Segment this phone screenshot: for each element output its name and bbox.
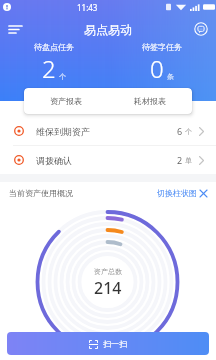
staticText: 扫一扫 — [103, 339, 127, 349]
staticText: 当前资产使用概况 — [9, 188, 73, 198]
staticText: 待盘点任务 — [34, 42, 74, 52]
button[interactable]: Menu — [5, 19, 25, 39]
staticText: 待签字任务 — [142, 42, 182, 52]
staticText: 维保到期资产 — [36, 126, 90, 137]
staticText: 11:43 — [77, 2, 98, 13]
staticText: 6 — [177, 125, 183, 137]
staticText: 2 — [42, 52, 56, 85]
staticText: 切换柱状图 — [157, 188, 197, 198]
staticText: 个 — [185, 127, 192, 136]
staticText: 调拨确认 — [36, 155, 72, 166]
button[interactable]: 维保到期资产 — [0, 117, 216, 145]
staticText: 条 — [167, 72, 174, 81]
button[interactable]: 调拨确认 — [0, 146, 216, 174]
staticText: 个 — [59, 72, 66, 81]
staticText: 0 — [150, 52, 164, 85]
staticText: 易点易动 — [84, 22, 132, 37]
button[interactable]: 耗材报表 — [108, 88, 192, 114]
staticText: 资产总数 — [94, 267, 122, 276]
staticText: 耗材报表 — [134, 96, 166, 106]
button[interactable]: 扫一扫 — [7, 332, 209, 355]
button[interactable]: 切换柱状图 — [157, 188, 207, 198]
staticText: 单 — [185, 156, 192, 165]
staticText: 资产报表 — [50, 96, 82, 106]
staticText: 214 — [94, 277, 122, 299]
button[interactable]: 资产报表 — [24, 88, 108, 114]
staticText: 2 — [177, 154, 183, 166]
button[interactable]: Messages — [191, 19, 211, 39]
